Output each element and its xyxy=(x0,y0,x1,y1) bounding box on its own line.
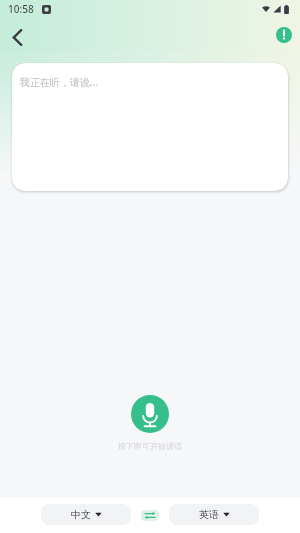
button[interactable] xyxy=(131,395,169,433)
staticText: 中文 xyxy=(71,508,91,521)
staticText: 按下即可开始讲话 xyxy=(118,441,182,451)
button[interactable]: 中文 xyxy=(41,504,131,525)
button[interactable]: 英语 xyxy=(169,504,259,525)
button[interactable] xyxy=(6,26,28,48)
staticText: 10:58 xyxy=(8,2,34,16)
staticText: 我正在听，请说... xyxy=(20,75,99,89)
staticText: 英语 xyxy=(199,508,219,521)
button[interactable] xyxy=(141,510,159,521)
button[interactable] xyxy=(276,27,292,43)
